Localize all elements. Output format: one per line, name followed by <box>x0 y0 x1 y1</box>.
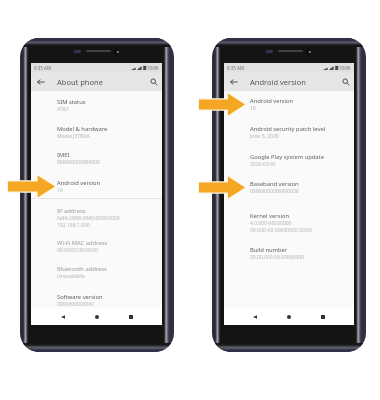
button[interactable]: Home <box>90 310 104 324</box>
staticText: Model J3TBAA <box>57 133 90 140</box>
button[interactable]: Recents <box>316 310 330 324</box>
staticText: 00.00.000.00.00000000 <box>250 254 304 261</box>
staticText: Android security patch level <box>250 125 326 133</box>
button[interactable]: Wi-Fi MAC address <box>31 239 162 254</box>
staticText: IP address <box>57 207 86 215</box>
staticText: June 5, 2020 <box>250 133 279 140</box>
button[interactable]: IP address <box>31 207 162 228</box>
button[interactable]: Build number <box>224 246 354 261</box>
staticText: Bluetooth address <box>57 265 107 273</box>
staticText: 000000000000000 <box>57 159 100 166</box>
staticText: 10 <box>250 105 256 112</box>
button[interactable]: Android security patch level <box>224 125 354 140</box>
staticText: Android version <box>250 97 294 105</box>
staticText: 100% <box>339 65 351 71</box>
staticText: 00000000000000000 <box>250 188 299 195</box>
staticText: Android version <box>250 77 306 87</box>
button[interactable]: Bluetooth address <box>31 265 162 280</box>
button[interactable]: Search <box>145 72 162 91</box>
staticText: fe80::0000:0000:0000:0000 192.168.1.000 <box>57 215 120 228</box>
button[interactable]: Back <box>31 72 50 91</box>
staticText: Google Play system update <box>250 153 324 161</box>
button[interactable]: Baseband version <box>224 180 354 195</box>
staticText: AT&T <box>57 106 69 113</box>
staticText: Wi-Fi MAC address <box>57 239 108 247</box>
button[interactable]: Back <box>56 310 70 324</box>
button[interactable]: Search <box>337 72 354 91</box>
staticText: 10 <box>57 187 63 194</box>
staticText: SIM status <box>57 98 86 106</box>
button[interactable]: Recents <box>124 310 138 324</box>
staticText: 6:35 AM <box>227 65 245 71</box>
button[interactable]: IMEI <box>31 151 162 166</box>
button[interactable]: Software version <box>31 293 162 308</box>
staticText: Build number <box>250 246 288 254</box>
staticText: Kernel version <box>250 212 290 220</box>
button[interactable]: SIM status <box>31 98 162 113</box>
staticText: Android version <box>57 179 101 187</box>
staticText: 4.0.000-00000000 00-000-00-00000000 00:0… <box>250 220 312 233</box>
button[interactable]: Model & hardware <box>31 125 162 140</box>
staticText: IMEI <box>57 151 70 159</box>
button[interactable]: Android version <box>31 179 162 194</box>
button[interactable]: Google Play system update <box>224 153 354 168</box>
button[interactable]: Back <box>224 72 243 91</box>
staticText: Unavailable <box>57 273 85 280</box>
staticText: 0000000000000 <box>57 301 95 308</box>
staticText: Baseband version <box>250 180 299 188</box>
staticText: 00:00:00:00:00:00 <box>57 247 99 254</box>
staticText: 100% <box>147 65 159 71</box>
staticText: Software version <box>57 293 103 301</box>
staticText: Model & hardware <box>57 125 108 133</box>
staticText: 6:35 AM <box>34 65 52 71</box>
button[interactable]: Kernel version <box>224 212 354 233</box>
staticText: 2020-03-01 <box>250 161 277 168</box>
staticText: About phone <box>57 77 103 87</box>
button[interactable]: Back <box>248 310 262 324</box>
button[interactable]: Android version <box>224 97 354 112</box>
button[interactable]: Home <box>282 310 296 324</box>
